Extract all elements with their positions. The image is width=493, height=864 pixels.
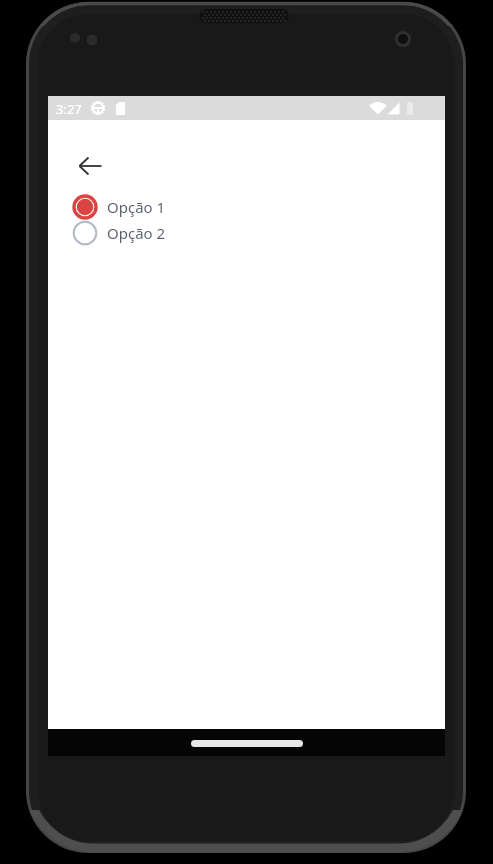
staticText: Opção 1 [107, 197, 166, 217]
staticText: Opção 2 [107, 223, 166, 243]
button[interactable] [66, 142, 114, 190]
button[interactable]: Opção 2 [72, 220, 166, 246]
button[interactable]: Opção 1 [72, 194, 166, 220]
staticText: 3:27 [56, 100, 82, 118]
